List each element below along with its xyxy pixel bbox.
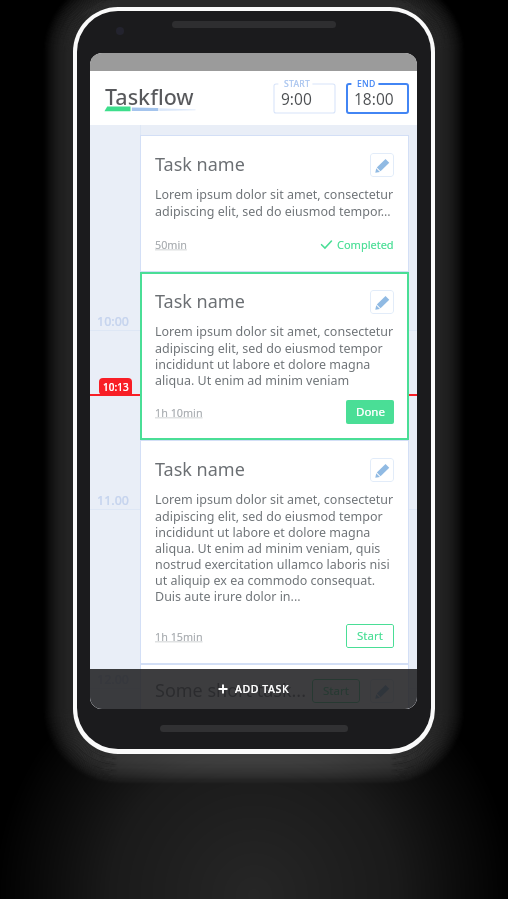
staticText: ADD TASK — [235, 682, 290, 696]
staticText: Task name — [155, 152, 245, 177]
button[interactable]: Completed — [321, 237, 394, 252]
button[interactable]: 1h 10min — [155, 405, 203, 420]
staticText: END — [357, 78, 376, 90]
button[interactable]: Task name — [140, 272, 409, 440]
button[interactable]: START — [274, 84, 335, 113]
button[interactable]: 1h 15min — [155, 629, 203, 644]
button[interactable]: Edit task — [370, 679, 394, 703]
staticText: 9:00 — [281, 88, 312, 109]
button[interactable]: Task name — [140, 440, 409, 664]
staticText: Start — [357, 628, 383, 644]
button[interactable]: Start — [346, 624, 394, 648]
button[interactable]: Edit task — [370, 458, 394, 482]
staticText: 10:00 — [97, 313, 130, 330]
staticText: Task name — [155, 289, 245, 314]
staticText: Completed — [337, 237, 394, 252]
staticText: 18:00 — [354, 88, 394, 109]
staticText: Taskflow — [105, 82, 194, 111]
button[interactable]: Edit task — [370, 290, 394, 314]
button[interactable]: Task name — [140, 135, 409, 272]
staticText: Start — [323, 683, 349, 699]
button[interactable]: Edit task — [370, 153, 394, 177]
staticText: START — [284, 78, 311, 90]
staticText: Lorem ipsum dolor sit amet, consectetur … — [155, 186, 394, 219]
button[interactable]: 50min — [155, 237, 187, 252]
button[interactable]: Some short task... — [140, 664, 409, 709]
staticText: 11.00 — [97, 492, 130, 509]
button[interactable]: ADD TASK — [90, 669, 417, 709]
staticText: Lorem ipsum dolor sit amet, consectetur … — [155, 323, 394, 388]
staticText: Lorem ipsum dolor sit amet, consectetur … — [155, 491, 394, 604]
button[interactable]: Done — [346, 400, 394, 424]
button[interactable]: END — [347, 84, 408, 113]
staticText: Done — [356, 404, 385, 420]
button[interactable]: Start — [312, 679, 360, 703]
staticText: 10:13 — [103, 380, 129, 394]
staticText: Task name — [155, 457, 245, 482]
staticText: Some short task... — [155, 678, 306, 703]
